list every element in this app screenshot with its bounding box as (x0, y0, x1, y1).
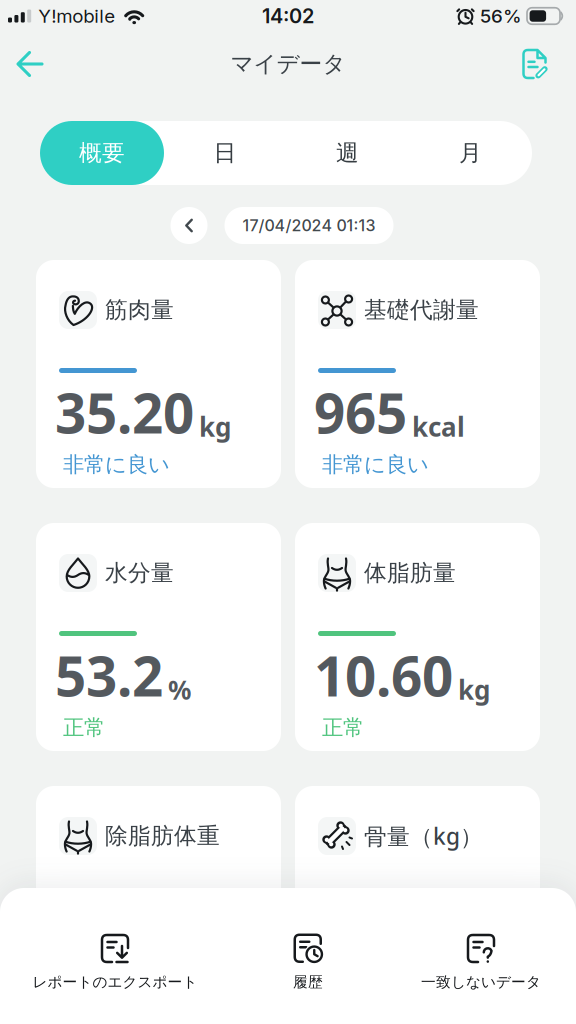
staticText: 965 (314, 375, 407, 449)
staticText: 基礎代謝量 (364, 296, 479, 324)
staticText: 履歴 (293, 973, 323, 991)
button[interactable]: 日 (164, 121, 286, 185)
staticText: 骨量（kg） (364, 821, 483, 851)
staticText: kcal (412, 409, 465, 444)
staticText: 一致しないデータ (421, 973, 541, 991)
button[interactable]: 月 (409, 121, 532, 185)
staticText: 非常に良い (322, 451, 429, 478)
staticText: 正常 (322, 714, 364, 741)
button[interactable]: 筋肉量 (36, 260, 281, 488)
staticText: 非常に良い (63, 451, 170, 478)
staticText: 体脂肪量 (364, 559, 456, 587)
button[interactable]: 除脂肪体重 (36, 786, 281, 1014)
button[interactable]: Back (0, 44, 44, 83)
staticText: 正常 (63, 714, 105, 741)
staticText: 除脂肪体重 (105, 822, 220, 850)
button[interactable]: 17/04/2024 01:13 (224, 207, 393, 244)
staticText: レポートのエクスポート (32, 973, 197, 991)
staticText: 概要 (79, 139, 125, 167)
staticText: 月 (459, 139, 482, 167)
button[interactable]: 基礎代謝量 (295, 260, 540, 488)
staticText: Y!mobile (38, 5, 115, 27)
staticText: 35.20 (55, 375, 194, 449)
staticText: 14:02 (262, 4, 314, 28)
button[interactable]: Previous (170, 207, 207, 244)
staticText: 日 (213, 139, 236, 167)
staticText: 56% (480, 5, 522, 27)
staticText: マイデータ (230, 50, 345, 78)
button[interactable]: 体脂肪量 (295, 523, 540, 751)
button[interactable]: 水分量 (36, 523, 281, 751)
button[interactable]: Edit report (521, 44, 576, 84)
staticText: 10.60 (314, 638, 453, 712)
staticText: 筋肉量 (105, 296, 174, 324)
staticText: % (168, 672, 191, 707)
staticText: 17/04/2024 01:13 (242, 216, 375, 235)
staticText: 水分量 (105, 559, 174, 587)
button[interactable]: 一致しないデータ (401, 932, 561, 991)
staticText: kg (199, 409, 231, 444)
staticText: 53.2 (55, 638, 163, 712)
staticText: kg (458, 672, 490, 707)
staticText: 週 (336, 139, 359, 167)
button[interactable]: 履歴 (263, 932, 353, 991)
button[interactable]: 骨量（kg） (295, 786, 540, 1014)
button[interactable]: 概要 (40, 121, 164, 185)
button[interactable]: レポートのエクスポート (15, 932, 215, 991)
button[interactable]: 週 (286, 121, 409, 185)
